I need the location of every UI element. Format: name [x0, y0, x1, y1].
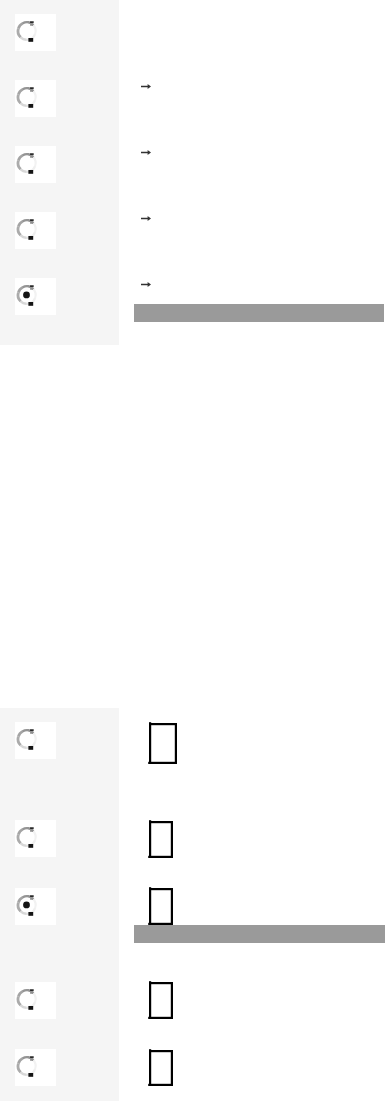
button[interactable]: Option 1	[15, 14, 56, 51]
button[interactable]: Option 2	[15, 80, 56, 117]
button[interactable]: Option 5, selected	[15, 278, 56, 315]
other: Next	[140, 278, 152, 290]
button[interactable]: Option 3	[15, 146, 56, 183]
button[interactable]: Option 5	[15, 1049, 56, 1086]
button[interactable]: Option 4	[15, 212, 56, 249]
button[interactable]: Option 4	[15, 982, 56, 1019]
other: Next	[140, 80, 152, 92]
button[interactable]: Option 2	[15, 820, 56, 857]
other: Next	[140, 212, 152, 224]
button[interactable]: Option 3, selected	[15, 888, 56, 925]
button[interactable]: Option 1	[15, 722, 56, 759]
other: Next	[140, 146, 152, 158]
